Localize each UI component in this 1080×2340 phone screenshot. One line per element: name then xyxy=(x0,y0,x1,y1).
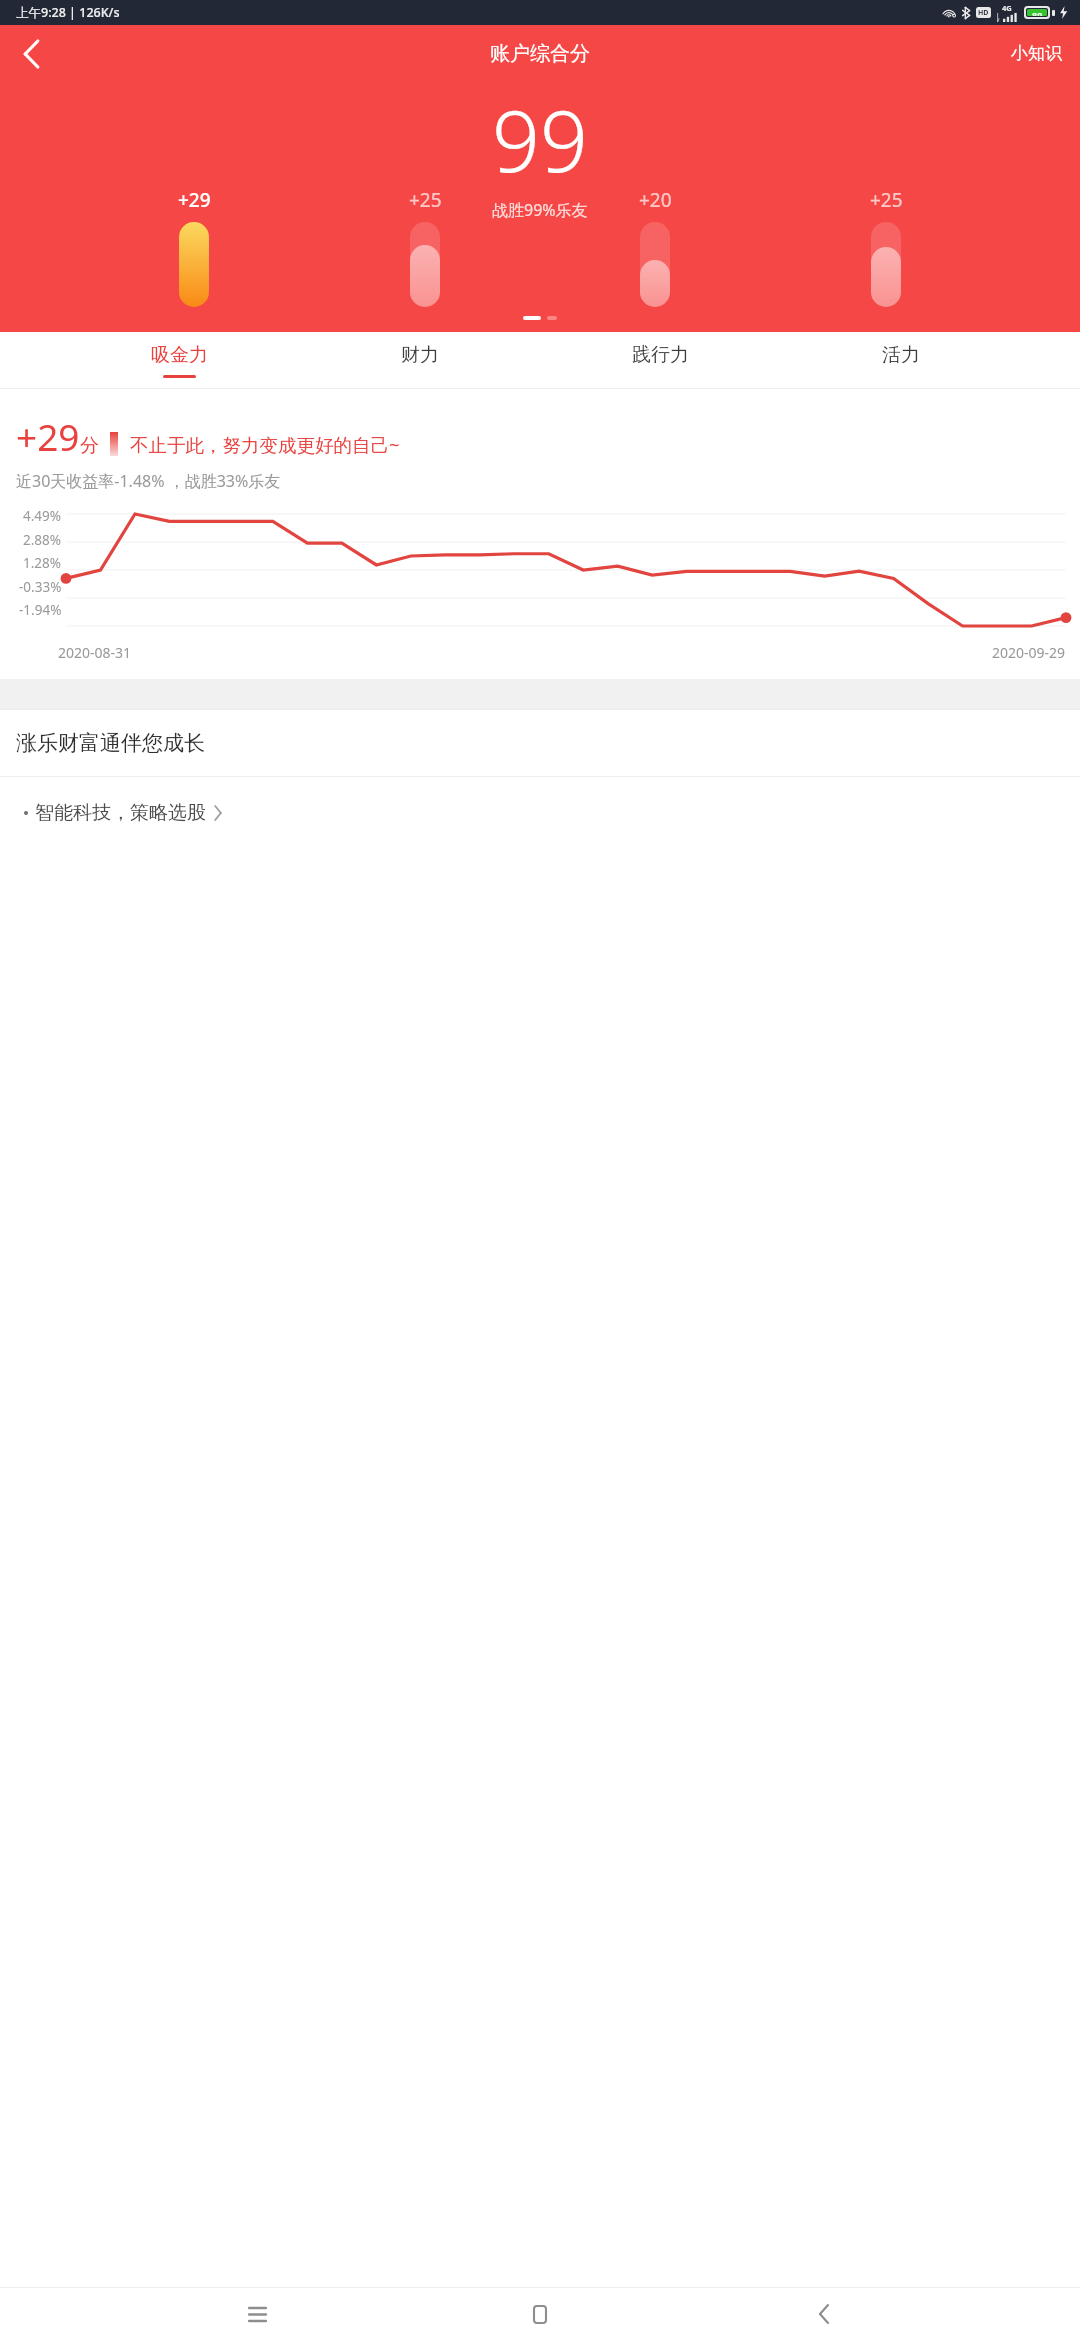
button[interactable]: Back xyxy=(6,29,56,79)
button[interactable]: 财力 xyxy=(358,332,482,388)
button[interactable]: +20 xyxy=(618,187,692,309)
button[interactable]: 活力 xyxy=(839,332,963,388)
staticText: 2.88% xyxy=(23,531,62,549)
staticText: 账户综合分 xyxy=(490,41,590,66)
button[interactable]: Recent apps xyxy=(230,2288,284,2340)
staticText: +29 xyxy=(16,411,80,461)
button[interactable]: Back xyxy=(797,2288,851,2340)
staticText: -0.33% xyxy=(19,578,62,596)
staticText: 4.49% xyxy=(23,507,62,525)
staticText: 99 xyxy=(492,82,588,196)
staticText: 2020-08-31 xyxy=(58,643,132,662)
staticText: +20 xyxy=(639,187,672,213)
button[interactable]: 智能科技，策略选股 xyxy=(0,777,1080,849)
staticText: 4G xyxy=(1002,3,1012,13)
staticText: 涨乐财富通伴您成长 xyxy=(16,730,205,756)
button[interactable]: 践行力 xyxy=(598,332,722,388)
staticText: 活力 xyxy=(882,343,920,367)
staticText: HD xyxy=(978,8,989,18)
staticText: 分 xyxy=(80,434,99,458)
button[interactable]: 吸金力 xyxy=(117,332,241,388)
staticText: 小知识 xyxy=(1011,43,1062,64)
button[interactable]: +25 xyxy=(849,187,923,309)
staticText: 上午9:28 | 126K/s xyxy=(16,4,120,21)
staticText: +25 xyxy=(870,187,903,213)
button[interactable]: +29 xyxy=(157,187,231,309)
button[interactable]: +25 xyxy=(388,187,462,309)
staticText: 89 xyxy=(1032,9,1043,16)
staticText: 不止于此，努力变成更好的自己~ xyxy=(130,432,400,457)
button[interactable]: 小知识 xyxy=(993,31,1080,76)
staticText: -1.94% xyxy=(19,601,62,619)
button[interactable]: Home xyxy=(513,2288,567,2340)
staticText: 近30天收益率-1.48% ，战胜33%乐友 xyxy=(16,470,281,492)
staticText: 2020-09-29 xyxy=(992,643,1066,662)
staticText: +25 xyxy=(409,187,442,213)
staticText: 智能科技，策略选股 xyxy=(35,801,206,825)
staticText: +29 xyxy=(178,187,211,213)
staticText: 战胜99%乐友 xyxy=(492,199,588,221)
staticText: 财力 xyxy=(401,343,439,367)
staticText: 1.28% xyxy=(23,554,62,572)
staticText: 吸金力 xyxy=(151,343,208,367)
staticText: 践行力 xyxy=(632,343,689,367)
